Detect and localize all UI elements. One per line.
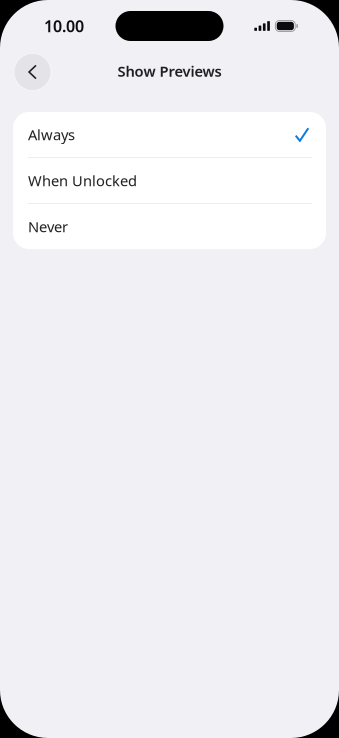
button[interactable]: When Unlocked — [13, 158, 326, 203]
staticText: 10.00 — [44, 15, 84, 37]
staticText: When Unlocked — [28, 171, 137, 190]
staticText: Always — [28, 125, 75, 144]
button[interactable]: Back — [14, 53, 51, 90]
staticText: Show Previews — [117, 61, 221, 81]
staticText: Never — [28, 217, 68, 236]
button[interactable]: Always — [13, 112, 326, 157]
button[interactable]: Never — [13, 204, 326, 249]
